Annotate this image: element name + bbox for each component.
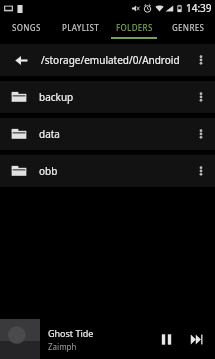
- button[interactable]: Ghost Tide: [0, 319, 215, 359]
- staticText: Ghost Tide: [48, 327, 94, 339]
- button[interactable]: data: [0, 118, 215, 150]
- button[interactable]: Up one level: [0, 44, 215, 76]
- button[interactable]: More options for backup: [189, 85, 213, 109]
- button[interactable]: SONGS: [0, 16, 53, 39]
- button[interactable]: GENRES: [161, 16, 215, 39]
- staticText: Zaimph: [48, 341, 77, 352]
- button[interactable]: More options for data: [189, 122, 213, 146]
- staticText: SONGS: [12, 22, 41, 33]
- button[interactable]: More options: [189, 48, 213, 72]
- button[interactable]: More options for obb: [189, 159, 213, 183]
- staticText: FOLDERS: [116, 22, 153, 33]
- staticText: PLAYLIST: [62, 22, 99, 33]
- button[interactable]: backup: [0, 81, 215, 113]
- other: Up one level: [12, 51, 30, 69]
- button[interactable]: Next track: [181, 324, 211, 354]
- button[interactable]: obb: [0, 155, 215, 187]
- staticText: data: [39, 127, 189, 141]
- button[interactable]: PLAYLIST: [53, 16, 107, 39]
- staticText: 14:39: [186, 1, 212, 15]
- button[interactable]: Pause: [151, 324, 181, 354]
- staticText: obb: [39, 164, 189, 178]
- staticText: /storage/emulated/0/Android: [41, 53, 189, 67]
- button[interactable]: FOLDERS: [107, 16, 161, 39]
- staticText: GENRES: [172, 22, 205, 33]
- staticText: backup: [39, 90, 189, 104]
